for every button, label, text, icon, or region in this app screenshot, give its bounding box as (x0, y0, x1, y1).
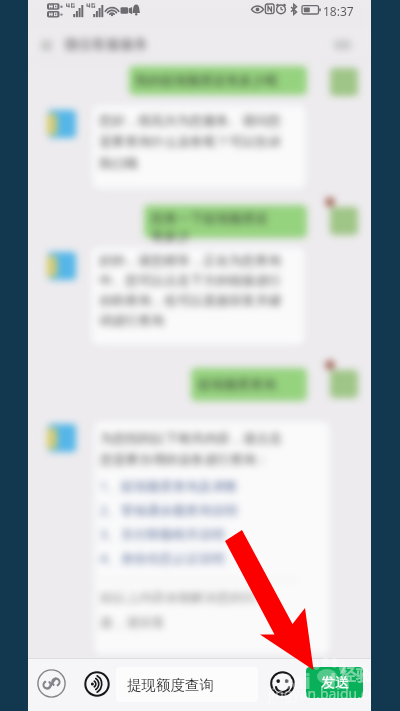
staticText: du (323, 667, 350, 696)
staticText: jingyan.baidu.com (268, 684, 371, 703)
staticText: 如以上内容未能解决您的问 题，请回复 (100, 589, 310, 631)
button[interactable]: Emoji (270, 671, 295, 696)
staticText: 为您找到以下相关内容，请点击 您需要办理的业务进行查询： (100, 430, 310, 468)
staticText: 我的提现额度还有多少呢 (135, 72, 278, 88)
staticText: 经验 (340, 666, 371, 686)
button[interactable]: 发送 (306, 667, 363, 698)
staticText: 18:37 (323, 3, 354, 19)
staticText: 微信客服服务 (64, 36, 148, 54)
staticText: 想查一下提现额度还 有多少 (151, 210, 301, 245)
staticText: Bai (278, 667, 311, 696)
button[interactable]: Voice input (84, 671, 110, 697)
staticText: 提现额度查询 (198, 376, 276, 392)
staticText: 1、提现额度查询及调整 2、零钱通余额查询说明 3、支付限额相关说明 4、身份信… (100, 477, 310, 567)
staticText: 好的，请您稍等，正在为您查询 中。您可以点击下方的链接进行 自助查询，也可以直接… (99, 252, 303, 329)
button[interactable]: 提现额度查询 (116, 667, 258, 702)
staticText: 提现额度查询 (127, 676, 214, 694)
staticText: 您好，很高兴为您服务。请问您 需要查询什么业务呢？可以告诉 我们哦 (99, 112, 303, 172)
staticText: 发送 (321, 674, 349, 692)
button[interactable]: Mini programs (37, 669, 66, 698)
